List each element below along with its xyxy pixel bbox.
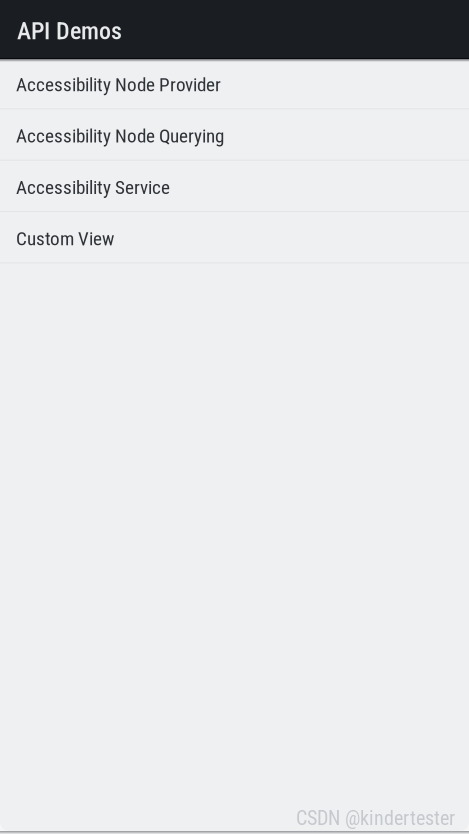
staticText: Accessibility Node Querying xyxy=(16,125,224,147)
staticText: CSDN @kindertester xyxy=(296,807,455,830)
button[interactable]: Accessibility Node Querying xyxy=(0,109,469,160)
staticText: Custom View xyxy=(16,228,114,250)
button[interactable]: Accessibility Service xyxy=(0,161,469,211)
button[interactable]: Accessibility Node Provider xyxy=(0,58,469,108)
staticText: API Demos xyxy=(17,17,122,45)
staticText: Accessibility Node Provider xyxy=(16,73,221,96)
button[interactable]: Custom View xyxy=(0,212,469,262)
staticText: Accessibility Service xyxy=(16,176,170,198)
